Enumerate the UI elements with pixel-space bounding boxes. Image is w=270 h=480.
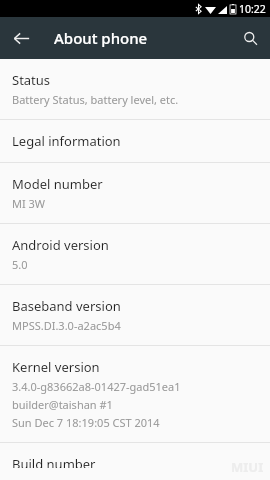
button[interactable]: Build number	[0, 443, 270, 480]
button[interactable]: Legal information	[0, 120, 270, 162]
staticText: Status	[12, 71, 51, 89]
staticText: Build number	[12, 455, 96, 468]
staticText: Baseband version	[12, 297, 121, 315]
staticText: Android version	[12, 236, 109, 254]
button[interactable]: Android version	[0, 224, 270, 284]
staticText: 5.0	[12, 257, 28, 272]
staticText: MPSS.DI.3.0-a2ac5b4	[12, 318, 121, 333]
staticText: 3.4.0-g83662a8-01427-gad51ea1	[12, 379, 181, 394]
button[interactable]: Model number	[0, 163, 270, 223]
staticText: Kernel version	[12, 358, 100, 376]
staticText: Sun Dec 7 18:19:05 CST 2014	[12, 415, 160, 430]
staticText: Battery Status, battery level, etc.	[12, 92, 179, 107]
button[interactable]: Kernel version	[0, 346, 270, 442]
staticText: Legal information	[12, 132, 121, 150]
button[interactable]: Back	[6, 23, 36, 53]
staticText: MI 3W	[12, 196, 46, 211]
button[interactable]: Status	[0, 59, 270, 119]
staticText: 10:22	[239, 2, 266, 16]
staticText: Model number	[12, 175, 103, 193]
staticText: MIUI	[231, 458, 264, 476]
staticText: About phone	[54, 28, 148, 48]
button[interactable]: Search	[235, 23, 265, 53]
button[interactable]: Baseband version	[0, 285, 270, 345]
staticText: builder@taishan #1	[12, 397, 113, 412]
